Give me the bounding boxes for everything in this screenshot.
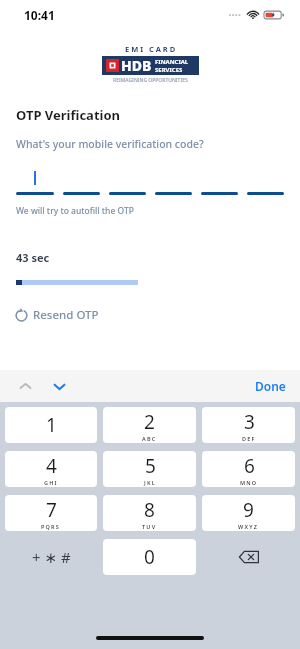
button[interactable]: 0 — [103, 539, 196, 575]
button[interactable] — [16, 169, 54, 195]
button[interactable]: 9 — [202, 495, 295, 531]
staticText: GHI — [44, 479, 58, 486]
staticText: ABC — [142, 435, 157, 442]
staticText: FINANCIAL — [155, 58, 189, 66]
staticText: 1 — [46, 412, 57, 438]
staticText: We will try to autofill the OTP — [16, 205, 134, 217]
staticText: MNO — [240, 479, 258, 486]
staticText: 0 — [144, 544, 155, 570]
staticText: 43 sec — [16, 250, 50, 265]
staticText: REIMAGINING OPPORTUNITIES — [113, 77, 188, 84]
button[interactable]: 6 — [202, 451, 295, 487]
staticText: TUV — [142, 523, 157, 530]
staticText: SERVICES — [155, 66, 183, 74]
button[interactable]: Done — [241, 374, 300, 398]
button[interactable]: 2 — [103, 407, 196, 443]
button[interactable]: 8 — [103, 495, 196, 531]
staticText: 3 — [244, 409, 255, 435]
staticText: HDB — [121, 56, 152, 75]
staticText: 5 — [145, 453, 156, 479]
button[interactable]: Next field — [46, 373, 72, 399]
button[interactable]: Resend OTP — [14, 307, 99, 323]
staticText: WXYZ — [238, 523, 259, 530]
button[interactable]: 7 — [5, 495, 97, 531]
staticText: 2 — [144, 409, 155, 435]
staticText: 9 — [243, 497, 254, 523]
staticText: E M I C A R D — [125, 44, 176, 54]
button[interactable]: Backspace — [202, 539, 295, 575]
staticText: 8 — [144, 497, 155, 523]
staticText: Done — [255, 378, 286, 394]
staticText: 6 — [244, 453, 255, 479]
button[interactable] — [201, 169, 238, 195]
button[interactable]: 1 — [5, 407, 97, 443]
staticText: + ∗ # — [32, 547, 71, 567]
button[interactable]: 5 — [103, 451, 196, 487]
staticText: JKL — [144, 479, 156, 486]
button[interactable] — [247, 169, 284, 195]
staticText: 7 — [46, 497, 57, 523]
staticText: PQRS — [41, 523, 61, 530]
button[interactable] — [63, 169, 100, 195]
staticText: Resend OTP — [33, 307, 99, 323]
staticText: 10:41 — [24, 7, 55, 23]
button[interactable]: 4 — [5, 451, 97, 487]
staticText: OTP Verification — [16, 106, 121, 124]
button[interactable] — [155, 169, 192, 195]
button[interactable] — [109, 169, 146, 195]
staticText: What's your mobile verification code? — [16, 137, 204, 151]
staticText: 4 — [46, 453, 57, 479]
button[interactable]: 3 — [202, 407, 295, 443]
button[interactable]: Previous field — [12, 373, 38, 399]
staticText: DEF — [242, 435, 256, 442]
button[interactable]: Symbols — [5, 539, 97, 575]
